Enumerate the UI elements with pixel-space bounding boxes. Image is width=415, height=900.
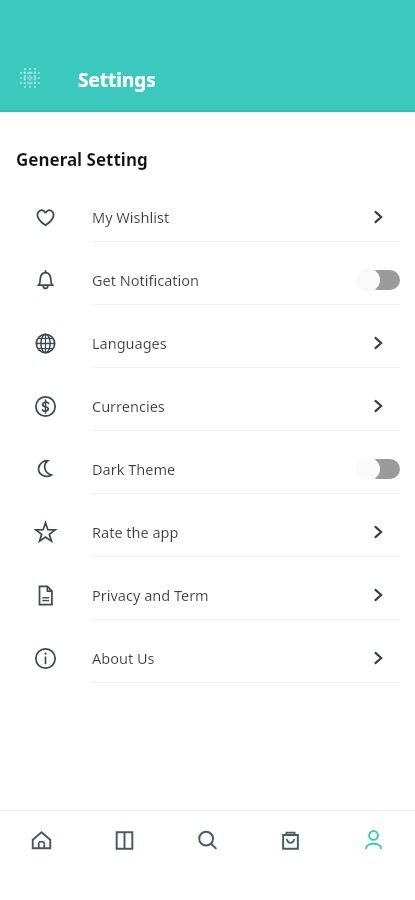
staticText: Dark Theme — [92, 459, 340, 479]
staticText: Rate the app — [92, 522, 340, 542]
staticText: My Wishlist — [92, 207, 340, 227]
staticText: Privacy and Term — [92, 585, 340, 605]
staticText: Get Notification — [92, 270, 340, 290]
staticText: Settings — [78, 67, 156, 93]
staticText: Languages — [92, 333, 340, 353]
staticText: General Setting — [16, 148, 148, 171]
button[interactable]: Privacy and Term — [0, 571, 415, 634]
button[interactable]: Dark Theme — [0, 445, 415, 508]
button[interactable]: Menu — [14, 62, 46, 94]
staticText: About Us — [92, 648, 340, 668]
button[interactable]: Profile — [332, 811, 415, 900]
button[interactable]: Bag — [249, 811, 332, 900]
button[interactable]: Toggle Get Notification — [356, 269, 400, 291]
staticText: Currencies — [92, 396, 340, 416]
button[interactable]: Toggle Dark Theme — [356, 458, 400, 480]
button[interactable]: Rate the app — [0, 508, 415, 571]
button[interactable]: My Wishlist — [0, 193, 415, 256]
button[interactable]: Get Notification — [0, 256, 415, 319]
button[interactable]: Catalog — [83, 811, 166, 900]
button[interactable]: Search — [166, 811, 249, 900]
button[interactable]: Home — [0, 811, 83, 900]
button[interactable]: Currencies — [0, 382, 415, 445]
button[interactable]: About Us — [0, 634, 415, 697]
button[interactable]: Languages — [0, 319, 415, 382]
